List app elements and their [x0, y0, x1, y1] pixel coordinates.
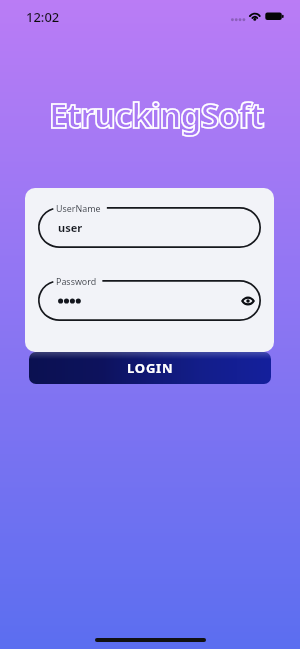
button[interactable]: Show password: [236, 289, 260, 313]
staticText: UserName: [56, 202, 101, 214]
staticText: LOGIN: [127, 359, 174, 377]
staticText: user: [58, 220, 83, 235]
staticText: Password: [56, 275, 97, 287]
staticText: 12:02: [26, 8, 60, 26]
staticText: EtruckingSoft: [6, 92, 300, 138]
button[interactable]: LOGIN: [29, 352, 271, 384]
